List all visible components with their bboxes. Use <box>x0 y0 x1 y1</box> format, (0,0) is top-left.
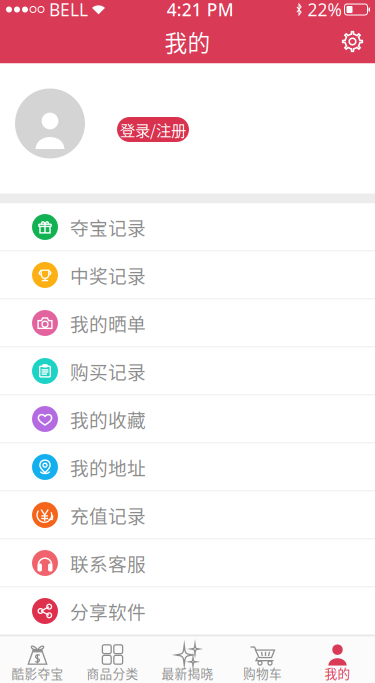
button[interactable]: Settings <box>330 19 375 63</box>
staticText: 充值记录 <box>70 501 146 528</box>
staticText: 4:21 PM <box>167 0 234 21</box>
button[interactable]: 购物车 <box>225 636 300 683</box>
staticText: 我的 <box>324 664 350 682</box>
staticText: 分享软件 <box>70 597 146 624</box>
staticText: BELL <box>44 0 88 21</box>
button[interactable]: 酷影夺宝 <box>0 636 75 683</box>
staticText: 我的收藏 <box>70 405 146 432</box>
staticText: 夺宝记录 <box>70 213 146 240</box>
button[interactable]: 夺宝记录 <box>0 203 375 251</box>
staticText: 我的晒单 <box>70 309 146 336</box>
button[interactable]: 我的 <box>300 636 375 683</box>
staticText: 购买记录 <box>70 357 146 384</box>
staticText: 购物车 <box>243 664 282 682</box>
button[interactable]: 商品分类 <box>75 636 150 683</box>
button[interactable]: Avatar <box>15 88 85 158</box>
staticText: 22% <box>302 0 341 21</box>
staticText: 中奖记录 <box>70 261 146 288</box>
staticText: 登录/注册 <box>120 118 186 141</box>
staticText: 商品分类 <box>86 664 138 682</box>
button[interactable]: 分享软件 <box>0 587 375 635</box>
button[interactable]: 联系客服 <box>0 539 375 587</box>
staticText: 我的地址 <box>70 453 146 480</box>
button[interactable]: 我的收藏 <box>0 395 375 443</box>
button[interactable]: 我的晒单 <box>0 299 375 347</box>
button[interactable]: 购买记录 <box>0 347 375 395</box>
staticText: 联系客服 <box>70 549 146 576</box>
button[interactable]: 充值记录 <box>0 491 375 539</box>
button[interactable]: 我的地址 <box>0 443 375 491</box>
button[interactable]: 登录/注册 <box>117 105 189 142</box>
staticText: 酷影夺宝 <box>11 664 63 682</box>
staticText: 最新揭晓 <box>161 664 213 682</box>
staticText: 我的 <box>164 25 210 58</box>
button[interactable]: 最新揭晓 <box>150 636 225 683</box>
button[interactable]: 中奖记录 <box>0 251 375 299</box>
